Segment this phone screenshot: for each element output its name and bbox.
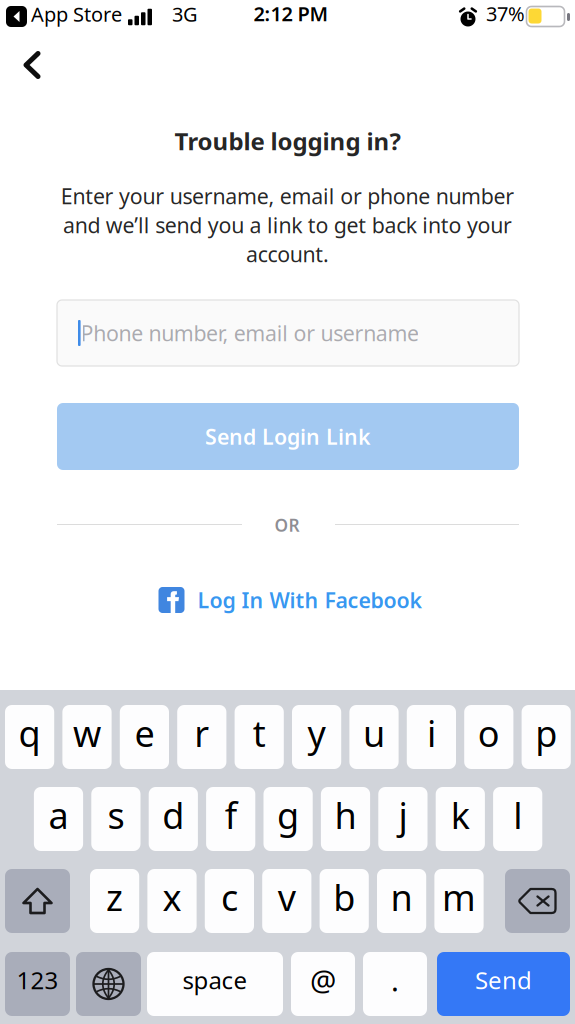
staticText: Send Login Link bbox=[205, 422, 371, 451]
button[interactable]: . bbox=[363, 952, 427, 1016]
staticText: Send bbox=[475, 964, 532, 996]
staticText: @ bbox=[310, 960, 336, 999]
button[interactable]: o bbox=[464, 705, 513, 769]
staticText: h bbox=[334, 791, 356, 839]
staticText: 37% bbox=[486, 0, 525, 27]
button[interactable]: r bbox=[177, 705, 226, 769]
staticText: e bbox=[134, 709, 154, 757]
staticText: 3G bbox=[172, 1, 198, 27]
button[interactable]: 123 bbox=[5, 952, 70, 1016]
button[interactable]: f bbox=[206, 787, 255, 851]
button[interactable]: z bbox=[90, 869, 139, 933]
button[interactable]: j bbox=[378, 787, 427, 851]
button[interactable]: h bbox=[321, 787, 370, 851]
button[interactable]: d bbox=[149, 787, 198, 851]
staticText: n bbox=[391, 873, 413, 921]
button[interactable]: @ bbox=[291, 952, 355, 1016]
staticText: OR bbox=[274, 513, 299, 536]
button[interactable]: s bbox=[91, 787, 140, 851]
button[interactable]: t bbox=[235, 705, 284, 769]
staticText: c bbox=[221, 873, 238, 921]
staticText: i bbox=[427, 709, 436, 757]
staticText: v bbox=[278, 873, 296, 921]
button[interactable]: Log In With Facebook bbox=[148, 583, 433, 617]
staticText: a bbox=[48, 791, 68, 839]
button[interactable]: q bbox=[5, 705, 54, 769]
button[interactable]: i bbox=[407, 705, 456, 769]
staticText: l bbox=[513, 791, 522, 839]
staticText: Trouble logging in? bbox=[174, 125, 400, 157]
button[interactable]: g bbox=[263, 787, 313, 851]
button[interactable]: Delete bbox=[505, 869, 570, 933]
button[interactable]: x bbox=[147, 869, 197, 933]
button[interactable]: Switch keyboard bbox=[76, 952, 141, 1016]
staticText: 2:12 PM bbox=[253, 0, 328, 27]
button[interactable]: u bbox=[349, 705, 399, 769]
staticText: account. bbox=[246, 240, 329, 268]
staticText: x bbox=[162, 873, 181, 921]
button[interactable]: b bbox=[320, 869, 369, 933]
staticText: and we’ll send you a link to get back in… bbox=[63, 211, 512, 239]
staticText: p bbox=[535, 709, 557, 757]
button[interactable]: c bbox=[205, 869, 254, 933]
button[interactable]: space bbox=[147, 952, 283, 1016]
staticText: d bbox=[162, 791, 184, 839]
staticText: z bbox=[106, 873, 123, 921]
staticText: r bbox=[194, 709, 209, 757]
staticText: k bbox=[451, 791, 470, 839]
button[interactable]: m bbox=[434, 869, 484, 933]
button[interactable]: y bbox=[292, 705, 341, 769]
staticText: b bbox=[333, 873, 355, 921]
staticText: u bbox=[363, 709, 385, 757]
button[interactable]: l bbox=[493, 787, 542, 851]
button[interactable]: Send Login Link bbox=[57, 403, 519, 470]
staticText: q bbox=[19, 709, 41, 757]
staticText: s bbox=[107, 791, 124, 839]
button[interactable]: e bbox=[120, 705, 169, 769]
staticText: m bbox=[442, 873, 476, 921]
button[interactable]: w bbox=[62, 705, 112, 769]
staticText: Enter your username, email or phone numb… bbox=[61, 182, 514, 210]
button[interactable]: Shift bbox=[5, 869, 70, 933]
staticText: . bbox=[391, 960, 399, 999]
staticText: t bbox=[253, 709, 266, 757]
button[interactable]: n bbox=[377, 869, 426, 933]
staticText: f bbox=[225, 791, 237, 839]
button[interactable]: Back bbox=[10, 42, 56, 88]
staticText: Phone number, email or username bbox=[81, 319, 419, 347]
staticText: w bbox=[73, 709, 101, 757]
staticText: App Store bbox=[31, 1, 122, 27]
staticText: j bbox=[398, 791, 407, 839]
staticText: o bbox=[478, 709, 500, 757]
staticText: g bbox=[277, 791, 299, 839]
button[interactable]: p bbox=[522, 705, 571, 769]
button[interactable]: k bbox=[436, 787, 485, 851]
staticText: Log In With Facebook bbox=[197, 586, 422, 614]
staticText: space bbox=[182, 964, 247, 996]
staticText: 123 bbox=[16, 964, 58, 996]
button[interactable]: Send bbox=[437, 952, 570, 1016]
button[interactable]: a bbox=[34, 787, 83, 851]
button[interactable]: v bbox=[262, 869, 311, 933]
staticText: y bbox=[308, 709, 326, 757]
